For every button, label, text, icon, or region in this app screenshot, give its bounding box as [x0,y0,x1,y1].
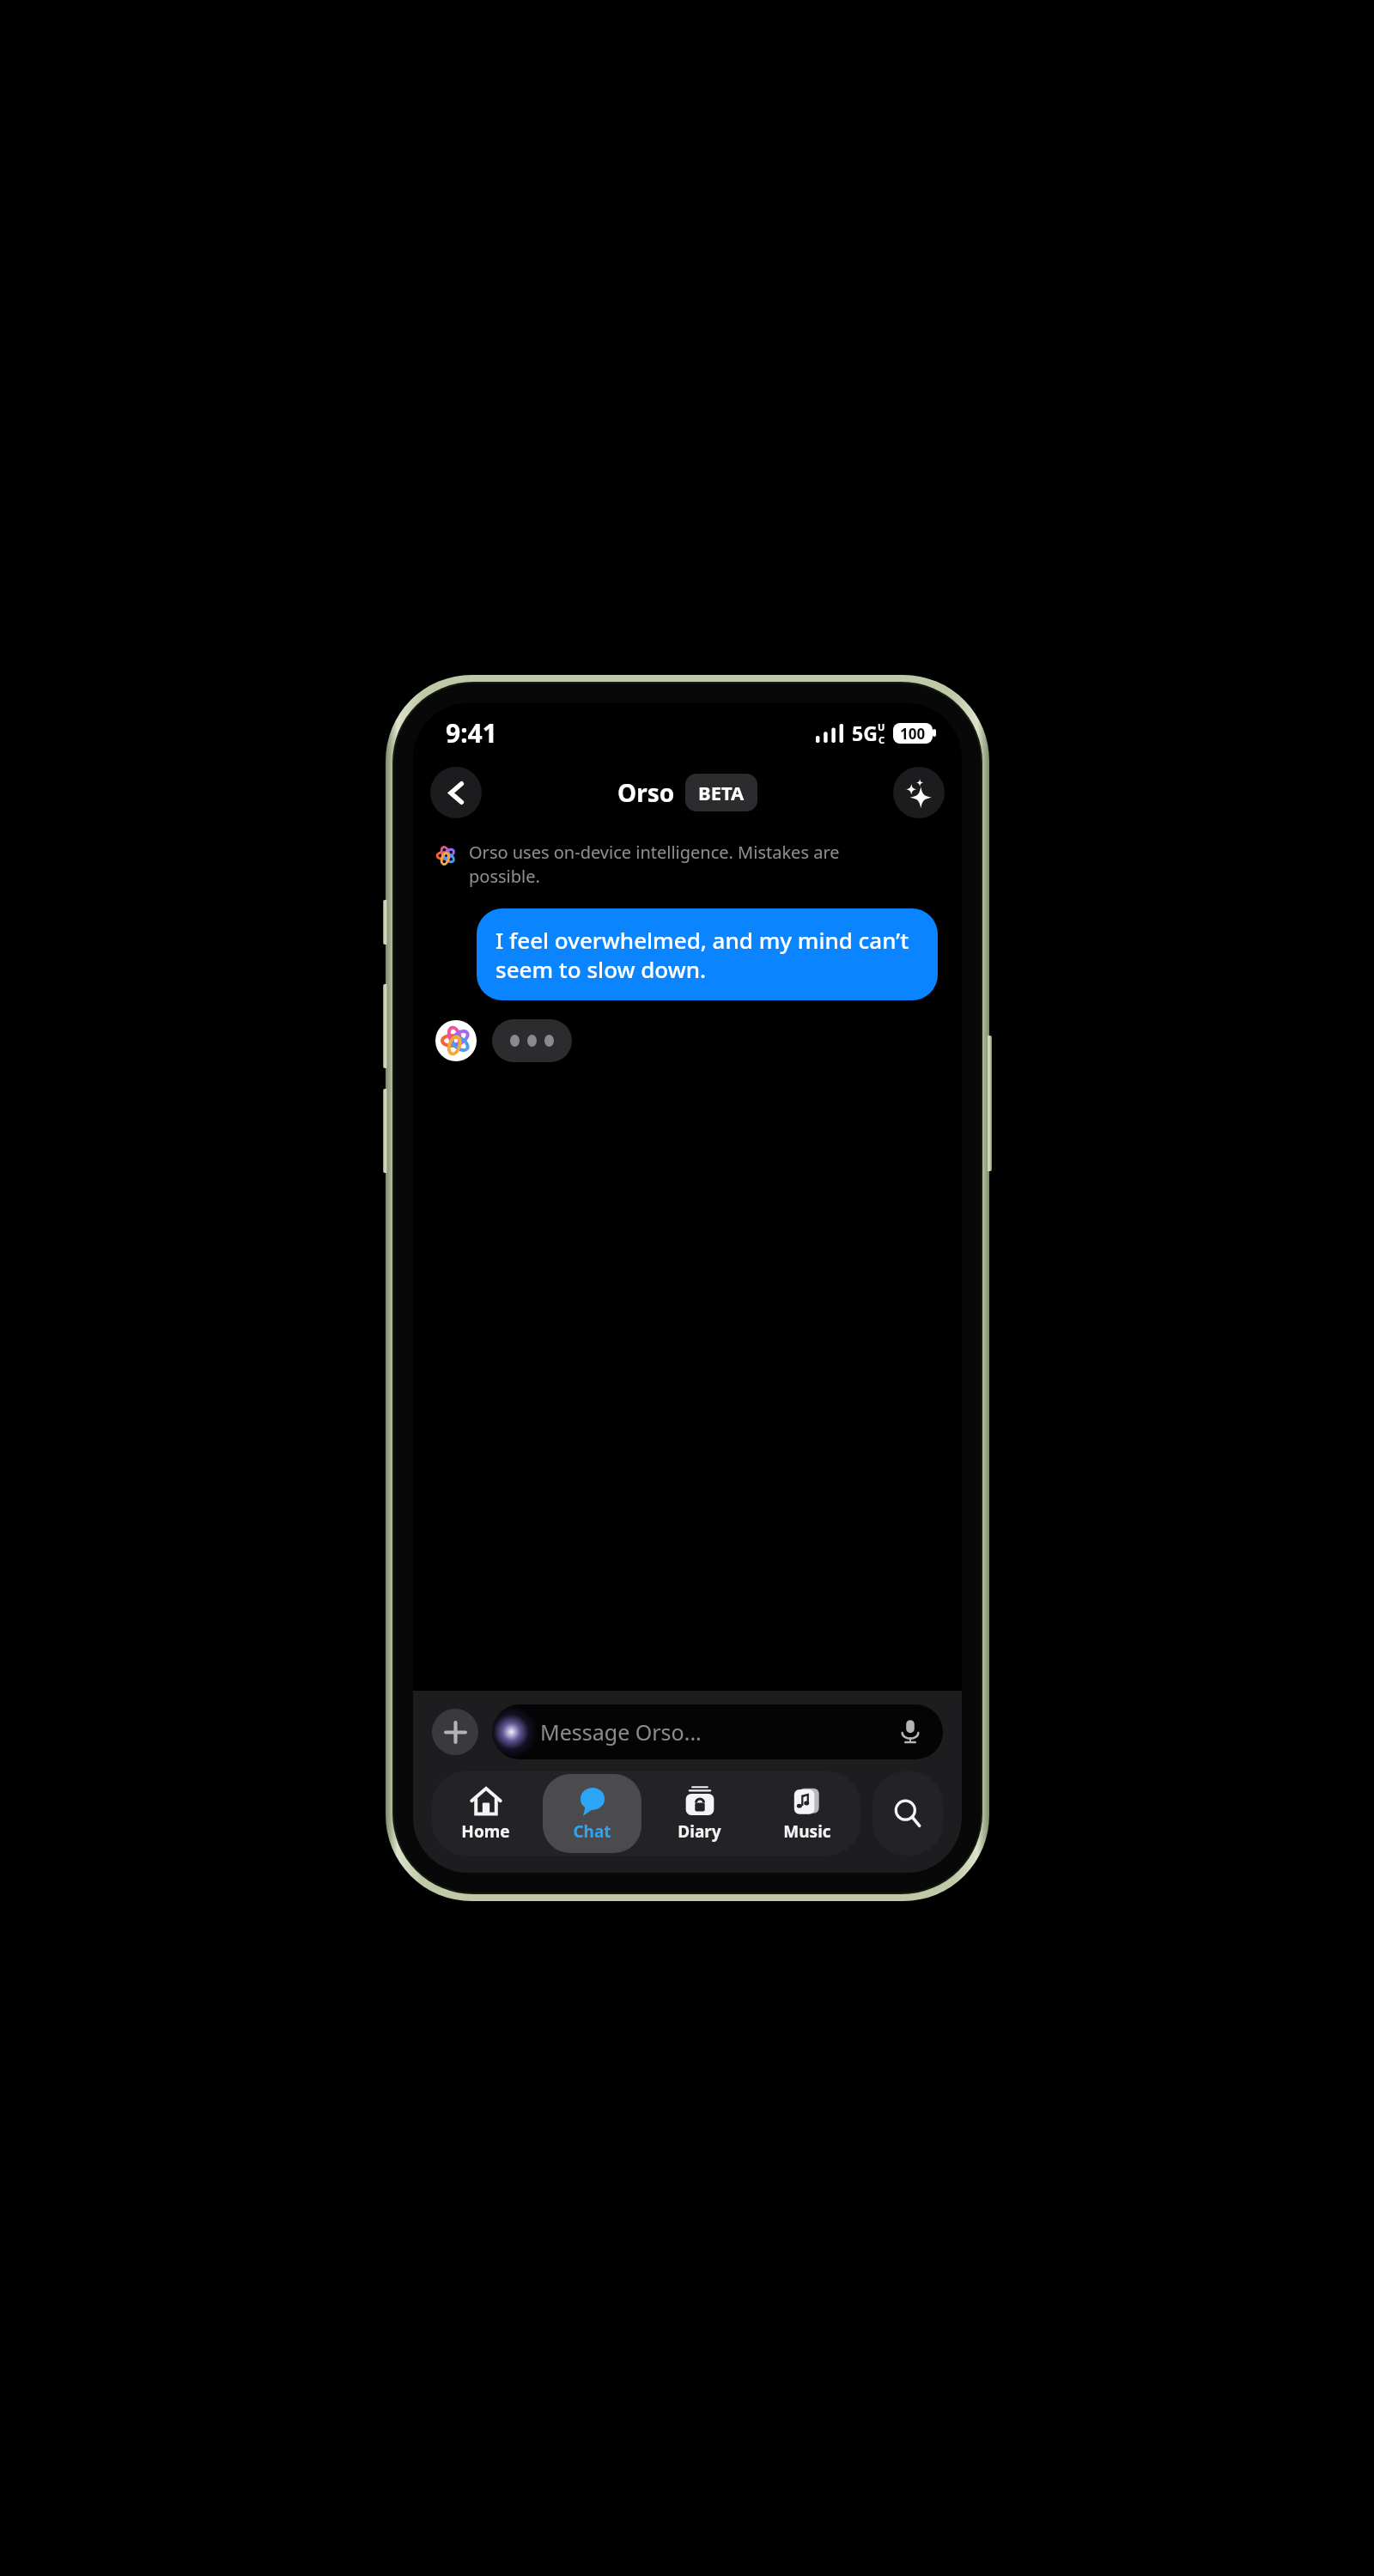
button[interactable]: BETA [685,774,757,811]
button[interactable]: Chat [543,1774,641,1853]
staticText: 9:41 [446,715,497,750]
staticText: Music [783,1820,831,1843]
button[interactable] [492,1019,572,1062]
button[interactable]: Home [436,1774,534,1853]
button[interactable]: Voice input [895,1716,926,1747]
staticText: Message Orso... [540,1717,702,1747]
button[interactable]: Diary [650,1774,749,1853]
staticText: 5G [852,720,878,746]
staticText: I feel overwhelmed, and my mind can’t se… [495,925,919,984]
staticText: Orso [617,776,675,809]
staticText: BETA [698,780,745,805]
button[interactable]: I feel overwhelmed, and my mind can’t se… [477,908,938,1000]
button[interactable]: Music [757,1774,856,1853]
staticText: Home [461,1820,510,1843]
staticText: 100 [900,724,926,744]
staticText: U [878,720,885,733]
button[interactable]: AI assistant [893,767,945,818]
button[interactable]: Add attachment [432,1709,478,1755]
button[interactable]: Search [872,1771,943,1856]
staticText: C [879,733,885,746]
staticText: Chat [573,1820,611,1843]
staticText: Orso uses on-device intelligence. Mistak… [469,841,888,888]
button[interactable]: Back [430,767,482,818]
staticText: Diary [678,1820,721,1843]
button[interactable]: Message Orso... [492,1704,943,1759]
